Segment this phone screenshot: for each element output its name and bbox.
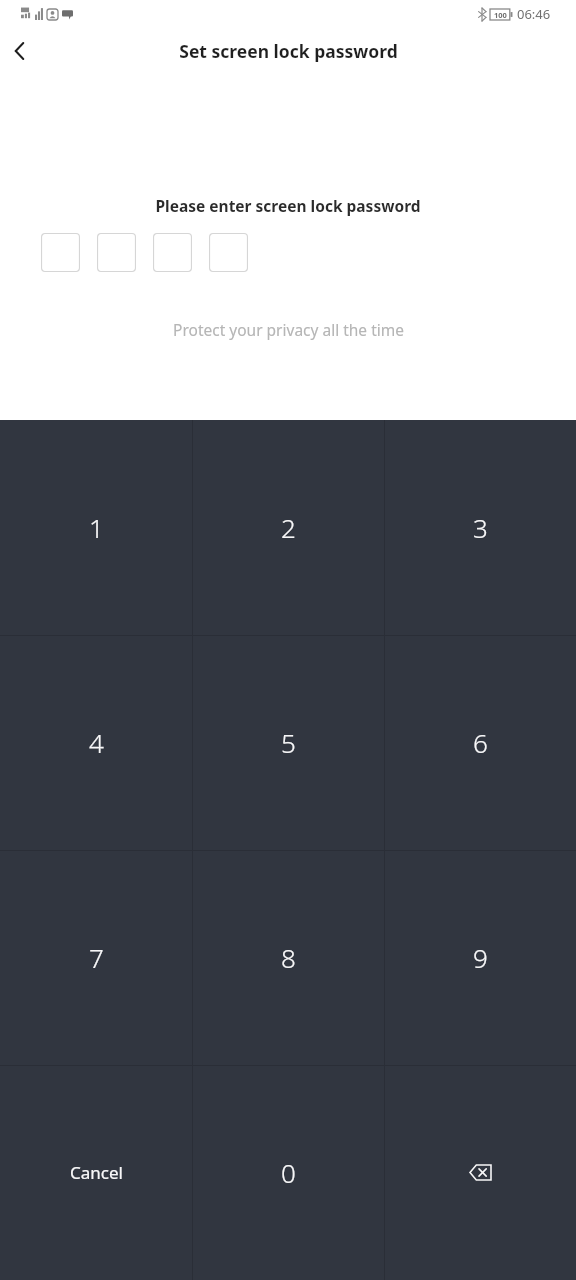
staticText: Set screen lock password <box>179 39 398 63</box>
staticText: 0 <box>281 1155 296 1190</box>
button[interactable]: Back <box>5 37 33 65</box>
staticText: Cancel <box>70 1161 123 1184</box>
button[interactable] <box>97 233 136 272</box>
button[interactable]: Cancel <box>0 1065 192 1280</box>
button[interactable]: 6 <box>385 635 576 850</box>
button[interactable] <box>41 233 80 272</box>
staticText: 4 <box>89 725 104 760</box>
staticText: 6 <box>473 725 488 760</box>
button[interactable]: Delete <box>385 1065 576 1280</box>
button[interactable]: 4 <box>0 635 192 850</box>
button[interactable]: 7 <box>0 850 192 1065</box>
staticText: 5 <box>281 725 296 760</box>
button[interactable]: 8 <box>193 850 384 1065</box>
staticText: 9 <box>473 940 488 975</box>
button[interactable] <box>209 233 248 272</box>
staticText: 100 <box>494 10 507 20</box>
staticText: 7 <box>89 940 104 975</box>
button[interactable] <box>153 233 192 272</box>
button[interactable]: 9 <box>385 850 576 1065</box>
staticText: 1 <box>89 510 104 545</box>
staticText: 2 <box>281 510 296 545</box>
staticText: Protect your privacy all the time <box>173 319 404 340</box>
button[interactable]: 3 <box>385 420 576 635</box>
button[interactable]: 5 <box>193 635 384 850</box>
staticText: 8 <box>281 940 296 975</box>
button[interactable]: 1 <box>0 420 192 635</box>
staticText: 06:46 <box>517 5 551 23</box>
button[interactable]: 2 <box>193 420 384 635</box>
staticText: 3 <box>473 510 488 545</box>
staticText: Please enter screen lock password <box>155 195 421 216</box>
button[interactable]: 0 <box>193 1065 384 1280</box>
